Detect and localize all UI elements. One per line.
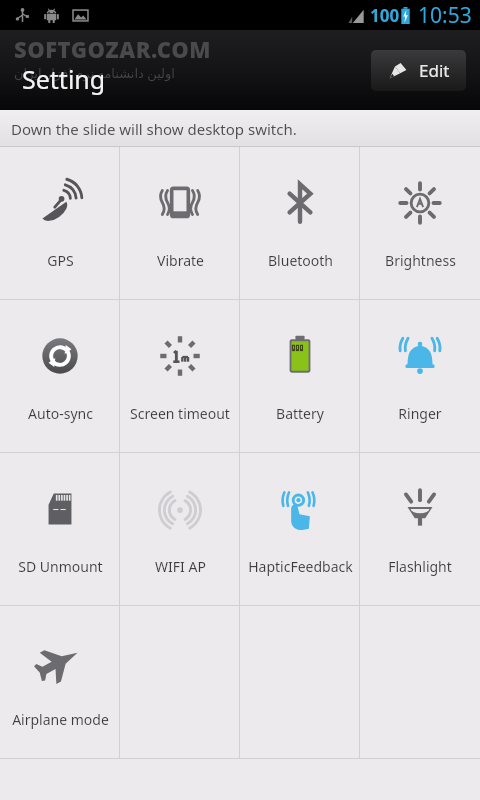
button[interactable]: Edit <box>371 50 466 91</box>
staticText: Down the slide will show desktop switch. <box>11 119 297 139</box>
staticText: Edit <box>419 59 450 82</box>
staticText: 10:53 <box>418 1 472 30</box>
staticText: Bluetooth <box>268 251 333 270</box>
staticText: Vibrate <box>157 251 204 270</box>
button[interactable]: Vibrate <box>120 147 240 299</box>
button[interactable]: SD Unmount <box>0 453 120 605</box>
button[interactable]: Airplane mode <box>0 606 120 758</box>
button[interactable]: WIFI AP <box>120 453 240 605</box>
staticText: GPS <box>47 251 74 270</box>
staticText: Auto-sync <box>28 404 93 423</box>
button[interactable]: GPS <box>0 147 120 299</box>
staticText: SOFTGOZAR.COM <box>14 34 211 64</box>
staticText: Ringer <box>398 404 442 423</box>
button[interactable]: Auto-sync <box>0 300 120 452</box>
staticText: Battery <box>276 404 324 423</box>
button[interactable]: Ringer <box>360 300 480 452</box>
staticText: WIFI AP <box>155 557 206 576</box>
staticText: Brightness <box>385 251 456 270</box>
button[interactable]: Battery <box>240 300 360 452</box>
button[interactable]: Screen timeout <box>120 300 240 452</box>
staticText: SD Unmount <box>18 557 103 576</box>
staticText: Airplane mode <box>12 710 109 729</box>
staticText: Flashlight <box>388 557 452 576</box>
button[interactable]: HapticFeedback <box>240 453 360 605</box>
button[interactable]: Bluetooth <box>240 147 360 299</box>
staticText: Setting <box>22 62 106 96</box>
staticText: Screen timeout <box>130 404 230 423</box>
staticText: 100 <box>370 4 400 27</box>
staticText: HapticFeedback <box>248 557 353 576</box>
staticText: اولین دانشنامه نرم افزار ایران <box>14 64 175 82</box>
button[interactable]: Brightness <box>360 147 480 299</box>
button[interactable]: Flashlight <box>360 453 480 605</box>
